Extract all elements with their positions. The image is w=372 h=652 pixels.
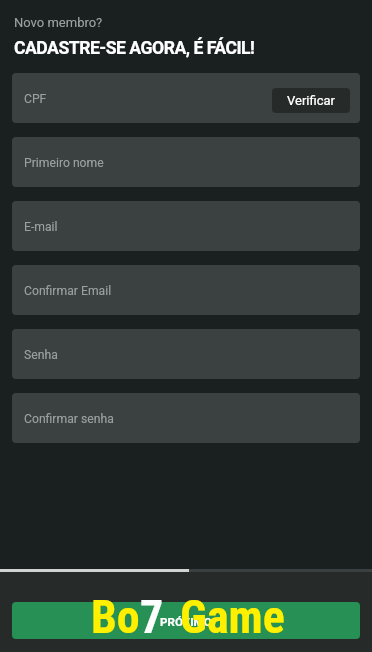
- staticText: CADASTRE-SE AGORA, É FÁCIL!: [14, 38, 255, 59]
- button[interactable]: Senha: [12, 329, 360, 379]
- staticText: Confirmar senha: [24, 412, 114, 426]
- staticText: Game: [180, 590, 285, 644]
- staticText: Primeiro nome: [24, 156, 104, 170]
- staticText: Novo membro?: [14, 15, 103, 30]
- staticText: CPF: [24, 92, 47, 106]
- staticText: Bo: [91, 590, 140, 644]
- staticText: Verificar: [287, 93, 335, 108]
- button[interactable]: Primeiro nome: [12, 137, 360, 187]
- button[interactable]: PRÓXIMO: [12, 602, 360, 639]
- staticText: Confirmar Email: [24, 284, 112, 298]
- staticText: 7: [140, 590, 164, 644]
- button[interactable]: E-mail: [12, 201, 360, 251]
- staticText: Senha: [24, 348, 58, 362]
- button[interactable]: Confirmar Email: [12, 265, 360, 315]
- staticText: PRÓXIMO: [160, 615, 212, 629]
- staticText: E-mail: [24, 220, 58, 234]
- button[interactable]: Verificar: [272, 88, 350, 113]
- button[interactable]: Confirmar senha: [12, 393, 360, 443]
- button[interactable]: CPF: [12, 73, 360, 123]
